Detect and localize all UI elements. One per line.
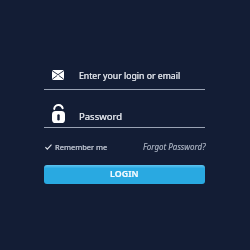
staticText: Remember me: [55, 142, 108, 152]
button[interactable]: Password: [44, 100, 205, 127]
staticText: Forgot Password?: [143, 141, 206, 152]
staticText: Password: [79, 110, 122, 123]
button[interactable]: Remember me: [44, 139, 134, 154]
button[interactable]: Forgot Password?: [130, 139, 206, 154]
button[interactable]: LOGIN: [44, 165, 205, 184]
button[interactable]: Enter your login or email: [44, 61, 205, 90]
staticText: LOGIN: [110, 168, 139, 180]
staticText: Enter your login or email: [79, 70, 181, 82]
